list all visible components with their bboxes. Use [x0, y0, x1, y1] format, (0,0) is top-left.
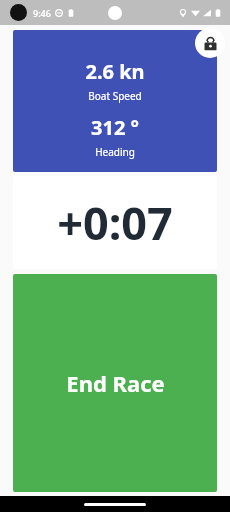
button[interactable]: End Race — [13, 274, 217, 492]
button[interactable]: +0:07 — [13, 176, 217, 269]
staticText: 312 ° — [91, 114, 139, 141]
staticText: 2.6 kn — [85, 58, 145, 85]
button[interactable]: Lock screen — [195, 28, 225, 58]
staticText: +0:07 — [57, 192, 173, 253]
staticText: 9:46 — [33, 7, 51, 19]
staticText: Heading — [95, 145, 135, 159]
button[interactable]: 2.6 kn — [13, 30, 217, 172]
staticText: Boat Speed — [88, 89, 142, 103]
staticText: End Race — [66, 368, 165, 398]
